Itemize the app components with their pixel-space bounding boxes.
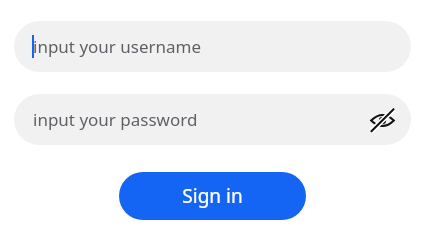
staticText: Sign in: [182, 183, 243, 209]
button[interactable]: Show password: [365, 103, 399, 137]
button[interactable]: input your password: [14, 94, 411, 145]
button[interactable]: Sign in: [119, 172, 306, 220]
button[interactable]: input your username: [14, 21, 411, 72]
staticText: input your password: [33, 108, 198, 131]
staticText: input your username: [33, 35, 202, 58]
